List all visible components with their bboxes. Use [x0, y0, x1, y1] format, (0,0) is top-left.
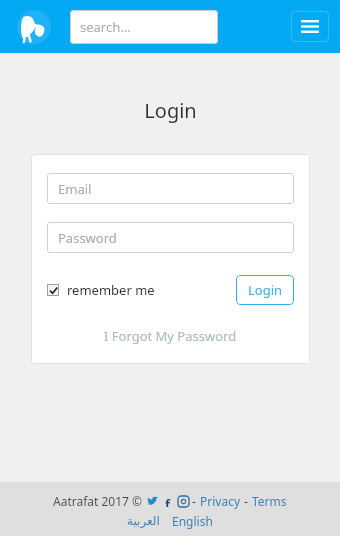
staticText: Privacy: [200, 493, 241, 509]
button[interactable]: Password: [47, 222, 294, 253]
button[interactable]: I Forgot My Password: [104, 327, 237, 345]
button[interactable]: العربية: [127, 514, 160, 528]
staticText: English: [172, 513, 213, 529]
staticText: Email: [58, 180, 92, 198]
staticText: f: [165, 495, 171, 507]
staticText: Login: [144, 97, 197, 124]
button[interactable]: Email: [47, 173, 294, 204]
staticText: -: [241, 493, 252, 509]
staticText: Login: [248, 281, 283, 299]
button[interactable]: Instagram: [177, 495, 189, 507]
button[interactable]: Privacy: [200, 493, 241, 509]
button[interactable]: search...: [70, 10, 218, 44]
staticText: I Forgot My Password: [104, 327, 237, 345]
staticText: Terms: [252, 493, 287, 509]
button[interactable]: Twitter: [146, 495, 159, 508]
button[interactable]: Login: [236, 275, 294, 305]
button[interactable]: Terms: [252, 493, 287, 509]
staticText: Aatrafat 2017 ©: [53, 493, 146, 509]
button[interactable]: Aatrafat home: [14, 7, 54, 47]
button[interactable]: remember me: [47, 281, 155, 299]
button[interactable]: English: [172, 513, 213, 529]
button[interactable]: Facebook: [162, 495, 174, 507]
staticText: search...: [80, 18, 131, 36]
button[interactable]: Menu: [291, 11, 329, 42]
staticText: العربية: [127, 514, 160, 528]
staticText: Password: [58, 229, 117, 247]
staticText: -: [189, 493, 200, 509]
staticText: remember me: [67, 281, 155, 299]
